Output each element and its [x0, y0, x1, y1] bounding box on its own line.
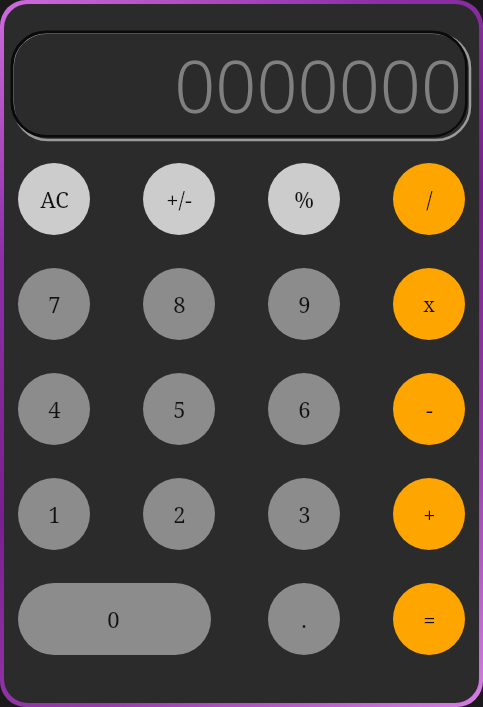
staticText: 0000000 — [174, 36, 462, 134]
staticText: 8 — [173, 289, 186, 319]
button[interactable]: 4 — [18, 373, 90, 445]
button[interactable]: 1 — [18, 478, 90, 550]
button[interactable]: 3 — [268, 478, 340, 550]
staticText: 3 — [298, 499, 311, 529]
staticText: + — [423, 499, 436, 529]
staticText: +/- — [166, 184, 192, 214]
button[interactable]: % — [268, 163, 340, 235]
staticText: 7 — [48, 289, 61, 319]
button[interactable]: +/- — [143, 163, 215, 235]
button[interactable]: 2 — [143, 478, 215, 550]
button[interactable]: 6 — [268, 373, 340, 445]
staticText: = — [423, 604, 436, 634]
button[interactable]: 5 — [143, 373, 215, 445]
staticText: 9 — [298, 289, 311, 319]
staticText: / — [426, 184, 433, 214]
staticText: 4 — [48, 394, 61, 424]
staticText: 5 — [173, 394, 186, 424]
button[interactable]: / — [393, 163, 465, 235]
button[interactable]: AC — [18, 163, 90, 235]
button[interactable]: = — [393, 583, 465, 655]
button[interactable]: 9 — [268, 268, 340, 340]
staticText: AC — [40, 184, 69, 214]
button[interactable]: + — [393, 478, 465, 550]
button[interactable]: 8 — [143, 268, 215, 340]
staticText: - — [426, 394, 433, 424]
staticText: 6 — [298, 394, 311, 424]
button[interactable]: x — [393, 268, 465, 340]
staticText: x — [423, 291, 435, 318]
staticText: . — [301, 604, 307, 634]
button[interactable]: - — [393, 373, 465, 445]
staticText: % — [294, 184, 314, 214]
staticText: 2 — [173, 499, 186, 529]
button[interactable]: . — [268, 583, 340, 655]
staticText: 0 — [107, 604, 120, 634]
button[interactable]: 0 — [18, 583, 211, 655]
staticText: 1 — [48, 499, 61, 529]
button[interactable]: 7 — [18, 268, 90, 340]
